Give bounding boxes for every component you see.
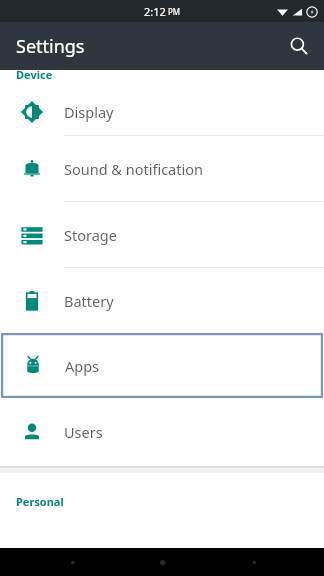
staticText: Apps bbox=[65, 356, 100, 376]
button[interactable]: Apps bbox=[1, 333, 323, 398]
button[interactable]: Storage bbox=[0, 202, 324, 267]
staticText: Storage bbox=[64, 225, 117, 245]
staticText: PM bbox=[168, 6, 181, 17]
staticText: Sound & notification bbox=[64, 159, 203, 179]
button[interactable]: Sound & notification bbox=[0, 136, 324, 201]
staticText: Users bbox=[64, 422, 103, 442]
button[interactable]: Battery bbox=[0, 268, 324, 333]
staticText: Device bbox=[16, 67, 53, 82]
staticText: Personal bbox=[16, 494, 64, 509]
button[interactable]: Users bbox=[0, 398, 324, 466]
staticText: Settings bbox=[16, 34, 85, 59]
staticText: Battery bbox=[64, 291, 114, 311]
button[interactable]: Display bbox=[0, 88, 324, 135]
staticText: Display bbox=[64, 102, 114, 122]
staticText: 2:12 bbox=[144, 4, 166, 19]
button[interactable]: Search bbox=[282, 29, 316, 63]
